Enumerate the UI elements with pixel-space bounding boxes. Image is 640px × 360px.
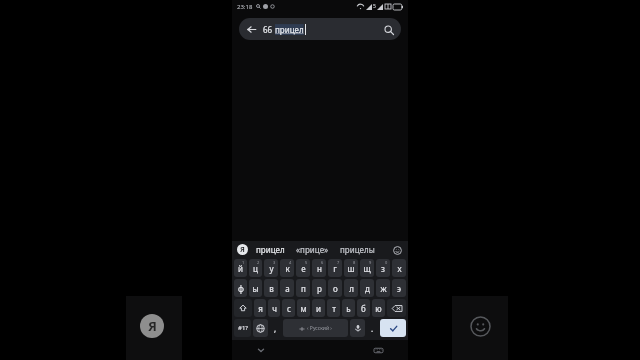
staticText: ы (252, 283, 259, 294)
button[interactable]: Hide keyboard (232, 340, 290, 360)
staticText: ю (375, 303, 382, 314)
button[interactable]: 0 (376, 259, 390, 277)
button[interactable]: и (312, 299, 325, 317)
staticText: 5 (373, 3, 376, 10)
button[interactable]: 8 (344, 259, 358, 277)
button[interactable]: , (270, 319, 281, 337)
staticText: с (287, 303, 291, 314)
staticText: 2 (257, 260, 260, 265)
button[interactable]: л (344, 279, 358, 297)
button[interactable]: «прице» (296, 244, 329, 255)
staticText: х (397, 263, 402, 274)
staticText: п (301, 283, 306, 294)
staticText: й (238, 263, 243, 274)
staticText: 7 (337, 260, 340, 265)
staticText: а (285, 283, 290, 294)
button[interactable]: в (264, 279, 278, 297)
button[interactable]: о (328, 279, 342, 297)
button[interactable]: Search (382, 23, 395, 36)
button[interactable]: 6 (312, 259, 326, 277)
button[interactable]: 7 (328, 259, 342, 277)
button[interactable]: 9 (360, 259, 374, 277)
button[interactable]: Back (245, 23, 258, 36)
button[interactable]: я (254, 299, 266, 317)
staticText: 23:18 (237, 3, 253, 11)
staticText: 9 (369, 260, 372, 265)
button[interactable]: р (312, 279, 326, 297)
staticText: , (274, 323, 277, 334)
staticText: . (371, 323, 374, 334)
button[interactable]: э (392, 279, 406, 297)
button[interactable]: п (296, 279, 310, 297)
staticText: ч (272, 303, 277, 314)
staticText: прицелы (340, 244, 375, 255)
button[interactable]: ч (268, 299, 280, 317)
staticText: 3 (273, 260, 276, 265)
button[interactable]: прицелы (340, 244, 375, 255)
button[interactable]: 4 (280, 259, 294, 277)
button[interactable]: м (297, 299, 310, 317)
button[interactable]: б (357, 299, 370, 317)
button[interactable]: Change language (253, 319, 268, 337)
staticText: г (333, 263, 337, 274)
button[interactable]: Emoji (391, 244, 403, 256)
staticText: щ (363, 263, 371, 274)
button[interactable]: ф (234, 279, 247, 297)
staticText: р (317, 283, 322, 294)
staticText: з (381, 263, 385, 274)
button[interactable]: . (367, 319, 378, 337)
button[interactable]: х (392, 259, 406, 277)
staticText: ь (346, 303, 351, 314)
staticText: ф (238, 283, 244, 294)
staticText: л (349, 283, 354, 294)
button[interactable]: Backspace (387, 299, 406, 317)
staticText: 1 (242, 260, 245, 265)
staticText: 0 (385, 260, 388, 265)
staticText: Я (148, 317, 157, 335)
staticText: т (332, 303, 336, 314)
staticText: н (317, 263, 322, 274)
staticText: в (269, 283, 274, 294)
staticText: «прице» (296, 244, 329, 255)
button[interactable]: 2 (249, 259, 262, 277)
button[interactable]: Yandex assistant (237, 244, 248, 255)
staticText: 8 (353, 260, 356, 265)
staticText: ж (380, 283, 387, 294)
button[interactable]: Back (245, 18, 395, 40)
button[interactable]: т (327, 299, 340, 317)
button[interactable]: ю (372, 299, 385, 317)
staticText: 6 (321, 260, 324, 265)
staticText: я (258, 303, 263, 314)
button[interactable]: 3 (264, 259, 278, 277)
staticText: е (301, 263, 306, 274)
staticText: 5 (305, 260, 308, 265)
staticText: 4 (289, 260, 292, 265)
staticText: Я (240, 245, 245, 255)
staticText: о (333, 283, 338, 294)
staticText: ш (347, 263, 355, 274)
button[interactable]: 5 (296, 259, 310, 277)
button[interactable]: Voice input (350, 319, 365, 337)
button[interactable]: 1 (234, 259, 247, 277)
button[interactable]: д (360, 279, 374, 297)
staticText: м (300, 303, 307, 314)
button[interactable]: Search (380, 319, 406, 337)
button[interactable]: Keyboard switcher (349, 340, 408, 360)
button[interactable]: с (282, 299, 295, 317)
staticText: прицел (275, 24, 304, 35)
staticText: д (365, 283, 370, 294)
button[interactable]: ж (376, 279, 390, 297)
button[interactable]: ь (342, 299, 355, 317)
staticText: прицел (256, 244, 285, 255)
button[interactable]: ‹ Русский › (283, 319, 348, 337)
button[interactable]: а (280, 279, 294, 297)
staticText: 66 (263, 24, 275, 35)
button[interactable]: прицел (256, 244, 285, 255)
button[interactable]: Shift (234, 299, 252, 317)
button[interactable]: #1? (234, 319, 251, 337)
staticText: к (285, 263, 290, 274)
staticText: ‹ Русский › (307, 325, 332, 332)
staticText: э (397, 283, 401, 294)
button[interactable]: ы (249, 279, 262, 297)
